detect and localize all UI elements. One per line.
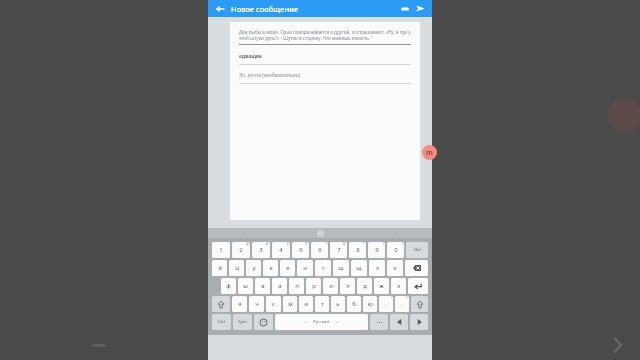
button[interactable]: Del [406,242,428,258]
button[interactable]: ф [221,278,236,294]
button[interactable]: з [369,260,385,276]
button[interactable]: 2 [232,242,250,258]
button[interactable]: 4 [272,242,290,258]
button[interactable]: в [255,278,270,294]
button[interactable]: Back [213,2,226,15]
staticText: р [312,282,316,290]
button[interactable]: х [387,260,403,276]
staticText: 9 [375,246,379,254]
staticText: к [269,264,273,272]
staticText: и [304,300,308,308]
button[interactable]: й [212,260,227,276]
staticText: ^ [325,242,327,246]
button[interactable]: Enter [408,278,428,294]
button[interactable]: т [315,296,329,312]
staticText: Ctrl [218,319,225,325]
button[interactable]: Backspace [405,260,428,276]
staticText: ж [379,282,384,290]
staticText: ~ [227,242,229,246]
button[interactable]: ц [229,260,244,276]
staticText: 5 [299,246,303,254]
button[interactable]: 5 [292,242,309,258]
staticText: м [288,300,293,308]
button[interactable]: Left [390,314,408,330]
button[interactable]: у [246,260,261,276]
staticText: Новое сообщение [231,4,299,14]
staticText: я [238,300,242,308]
staticText: $ [287,242,289,246]
staticText: т [321,300,324,308]
button[interactable]: Space [275,314,368,330]
button[interactable]: р [306,278,321,294]
button[interactable]: о [323,278,338,294]
button[interactable]: 9 [368,242,385,258]
button[interactable]: Ctrl [212,314,231,330]
button[interactable]: я [232,296,247,312]
button[interactable]: 8 [349,242,366,258]
staticText: ь [336,300,340,308]
button[interactable]: д [357,278,372,294]
button[interactable]: м [283,296,297,312]
staticText: е [286,264,290,272]
button[interactable]: Shift [212,296,230,312]
staticText: 8 [356,246,360,254]
staticText: , [385,300,387,308]
button[interactable]: ч [249,296,264,312]
button[interactable]: , [379,296,393,312]
button[interactable]: щ [351,260,367,276]
button[interactable]: Settings [370,314,388,330]
button[interactable]: ю [363,296,377,312]
button[interactable]: е [280,260,295,276]
staticText: ( [383,242,384,246]
staticText: ы [243,282,248,290]
button[interactable]: и [299,296,313,312]
button[interactable]: 0 [387,242,404,258]
staticText: о [329,282,333,290]
button[interactable]: Emoji [254,314,273,330]
staticText: 7 [337,246,341,254]
staticText: п [295,282,299,290]
staticText: ? [406,296,408,300]
staticText: щ [356,264,362,272]
staticText: Sym [238,319,247,325]
staticText: 3 [259,246,263,254]
button[interactable]: Preview [398,2,411,15]
button[interactable]: Mobizen [422,145,437,160]
button[interactable]: 6 [311,242,328,258]
staticText: ч [255,300,259,308]
button[interactable]: ш [333,260,349,276]
staticText: • [336,320,338,325]
staticText: э [397,282,400,290]
button[interactable]: Sym [233,314,252,330]
button[interactable]: . [395,296,409,312]
button[interactable]: Send [414,2,427,15]
staticText: Del [414,247,421,253]
button[interactable]: 1 [212,242,230,258]
button[interactable]: к [263,260,278,276]
button[interactable]: а [272,278,287,294]
button[interactable]: 7 [330,242,347,258]
button[interactable]: г [315,260,331,276]
button[interactable]: п [289,278,304,294]
button[interactable]: Recents [92,344,106,347]
button[interactable]: н [297,260,313,276]
button[interactable]: л [340,278,355,294]
button[interactable]: ж [374,278,389,294]
staticText: з [376,264,379,272]
button[interactable]: ы [238,278,253,294]
staticText: 6 [318,246,322,254]
button[interactable]: Next [604,330,632,360]
staticText: 1 [219,246,223,254]
staticText: в [261,282,265,290]
staticText: с [272,300,275,308]
button[interactable]: э [391,278,406,294]
button[interactable]: Shift [411,296,428,312]
staticText: х [393,264,397,272]
button[interactable]: ь [331,296,345,312]
button[interactable]: с [266,296,281,312]
staticText: у [252,264,256,272]
button[interactable]: б [347,296,361,312]
button[interactable]: Right [410,314,428,330]
staticText: л [346,282,350,290]
button[interactable]: 3 [252,242,270,258]
